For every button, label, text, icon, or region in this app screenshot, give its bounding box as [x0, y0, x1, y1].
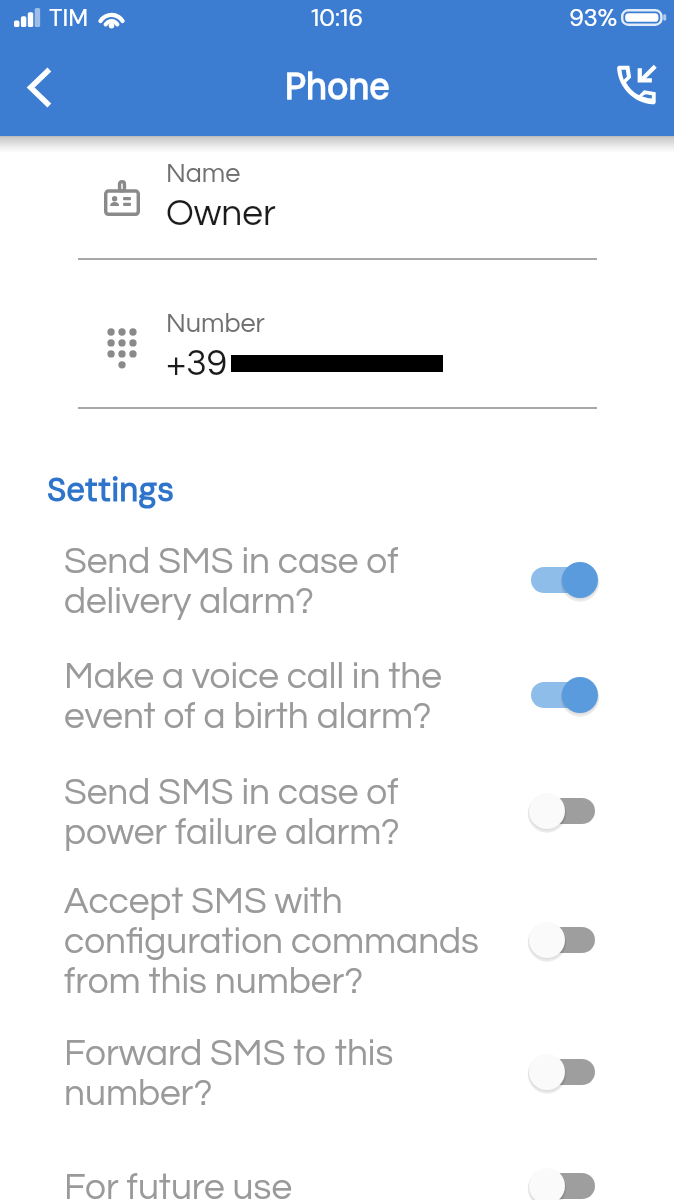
button[interactable]: Accept SMS with configuration commands f… [40, 870, 601, 1010]
button[interactable]: Send SMS in case of delivery alarm? [40, 510, 601, 650]
staticText: Owner [166, 195, 276, 233]
button[interactable]: Number [0, 300, 674, 408]
button[interactable]: For future use [40, 1116, 601, 1200]
staticText: Send SMS in case of delivery alarm? [64, 543, 399, 621]
staticText: TIM [49, 2, 89, 33]
staticText: Make a voice call in the event of a birt… [64, 658, 442, 736]
staticText: For future use [64, 1169, 292, 1200]
staticText: Accept SMS with configuration commands f… [64, 883, 479, 1001]
button[interactable]: Back [10, 57, 70, 117]
staticText: Name [166, 160, 241, 188]
button[interactable]: Send SMS in case of power failure alarm? [40, 741, 601, 881]
staticText: Phone [285, 63, 390, 110]
staticText: Number [166, 310, 265, 338]
button[interactable]: Make a voice call in the event of a birt… [40, 625, 601, 765]
staticText: 93% [569, 2, 618, 33]
button[interactable]: Forward SMS to this number? [40, 1002, 601, 1142]
button[interactable]: Call history [603, 53, 669, 119]
button[interactable]: Name [0, 150, 674, 258]
staticText: +39 [166, 345, 228, 383]
staticText: 10:16 [311, 2, 364, 33]
staticText: Settings [47, 468, 175, 511]
staticText: Send SMS in case of power failure alarm? [64, 774, 400, 852]
staticText: Forward SMS to this number? [64, 1035, 394, 1113]
